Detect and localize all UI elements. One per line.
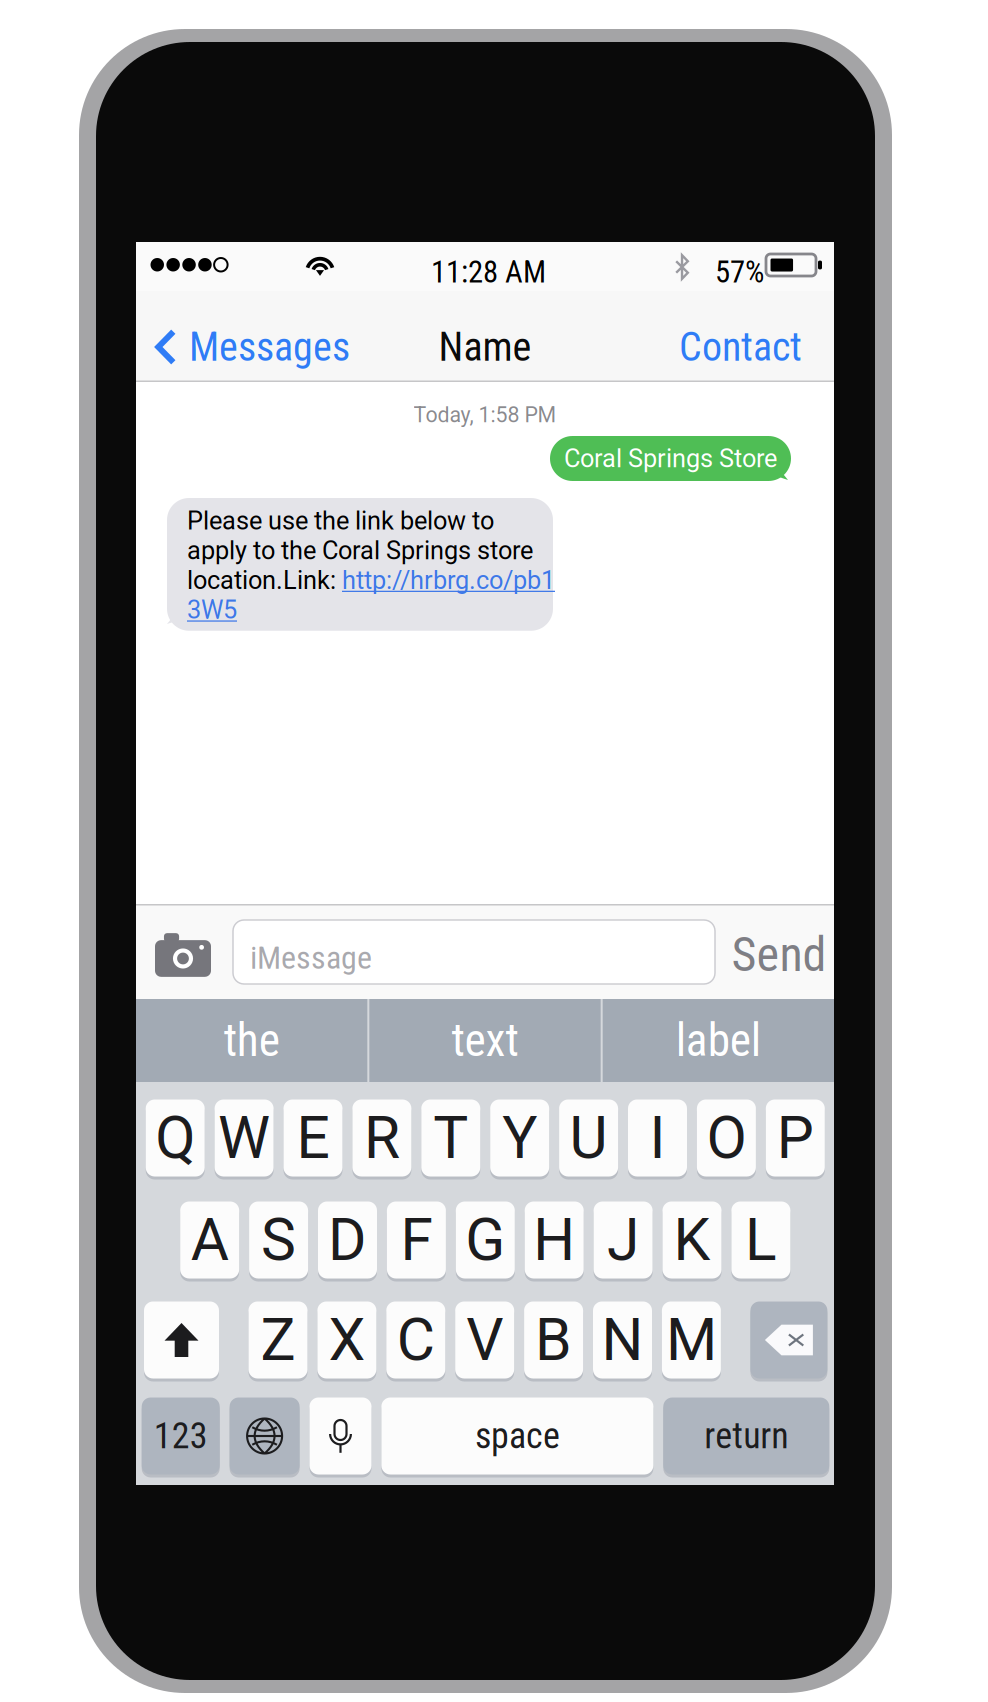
button[interactable]: Q — [146, 1098, 205, 1178]
staticText: B — [535, 1306, 572, 1374]
staticText: L — [745, 1206, 777, 1274]
button[interactable]: E — [283, 1098, 342, 1178]
staticText: A — [191, 1206, 229, 1274]
staticText: space — [475, 1415, 560, 1457]
staticText: U — [570, 1104, 608, 1172]
button[interactable]: Camera — [136, 904, 230, 999]
button[interactable]: I — [628, 1098, 687, 1178]
staticText: Send — [731, 926, 826, 983]
staticText: Coral Springs Store — [564, 444, 777, 473]
staticText: return — [704, 1415, 788, 1457]
staticText: N — [601, 1306, 643, 1374]
staticText: Messages — [189, 324, 350, 370]
staticText: 11:28 AM — [431, 254, 546, 290]
button[interactable]: return — [663, 1396, 829, 1476]
staticText: iMessage — [250, 939, 372, 976]
button[interactable]: R — [352, 1098, 411, 1178]
staticText: the — [224, 1014, 280, 1067]
staticText: O — [706, 1104, 746, 1172]
staticText: T — [433, 1104, 468, 1172]
staticText: text — [451, 1014, 518, 1067]
staticText: Today, 1:58 PM — [413, 402, 556, 427]
staticText: W — [218, 1104, 270, 1172]
staticText: S — [261, 1206, 296, 1274]
button[interactable]: H — [525, 1200, 584, 1280]
button[interactable]: S — [249, 1200, 308, 1280]
button[interactable]: label — [603, 999, 834, 1082]
staticText: C — [397, 1306, 435, 1374]
button[interactable]: V — [455, 1300, 514, 1380]
staticText: K — [673, 1206, 710, 1274]
button[interactable]: Dictation — [309, 1396, 371, 1476]
staticText: location.Link: — [187, 565, 342, 595]
staticText: apply to the Coral Springs store — [187, 536, 533, 565]
button[interactable]: Send — [724, 907, 834, 1002]
staticText: D — [328, 1206, 367, 1274]
staticText: Q — [155, 1104, 195, 1172]
staticText: H — [533, 1206, 575, 1274]
button[interactable]: Contact — [659, 310, 822, 384]
staticText: 123 — [154, 1415, 208, 1457]
button[interactable]: O — [697, 1098, 756, 1178]
button[interactable]: B — [524, 1300, 583, 1380]
staticText: J — [607, 1206, 639, 1274]
staticText: M — [666, 1306, 717, 1374]
staticText: label — [676, 1014, 761, 1067]
staticText: R — [364, 1104, 400, 1172]
button[interactable]: Shift — [144, 1300, 219, 1380]
button[interactable]: J — [594, 1200, 653, 1280]
button[interactable]: 123 — [142, 1396, 220, 1476]
button[interactable]: A — [180, 1200, 239, 1280]
button[interactable]: T — [421, 1098, 480, 1178]
button[interactable]: the — [136, 999, 367, 1082]
staticText: Please use the link below to — [187, 506, 494, 536]
button[interactable]: X — [317, 1300, 376, 1380]
button[interactable]: iMessage — [233, 920, 715, 984]
button[interactable]: space — [381, 1396, 653, 1476]
button[interactable]: text — [369, 999, 601, 1082]
staticText: 57% — [715, 254, 764, 290]
button[interactable]: Z — [248, 1300, 307, 1380]
staticText: E — [296, 1104, 329, 1172]
button[interactable]: Messages — [136, 310, 366, 384]
button[interactable]: Y — [490, 1098, 549, 1178]
staticText: Y — [502, 1104, 537, 1172]
button[interactable]: D — [318, 1200, 377, 1280]
staticText: G — [465, 1206, 505, 1274]
button[interactable]: Backspace — [750, 1300, 827, 1380]
button[interactable]: G — [456, 1200, 515, 1280]
staticText: I — [649, 1104, 665, 1172]
button[interactable]: Next keyboard — [230, 1396, 300, 1476]
button[interactable]: F — [387, 1200, 446, 1280]
staticText: Z — [260, 1306, 295, 1374]
staticText: P — [777, 1104, 814, 1172]
staticText: http://hrbrg.co/pb1 — [342, 565, 555, 595]
staticText: V — [466, 1306, 503, 1374]
button[interactable]: L — [731, 1200, 790, 1280]
staticText: F — [400, 1206, 432, 1274]
button[interactable]: K — [662, 1200, 721, 1280]
button[interactable]: N — [593, 1300, 652, 1380]
button[interactable]: W — [215, 1098, 274, 1178]
button[interactable]: U — [559, 1098, 618, 1178]
staticText: X — [328, 1306, 365, 1374]
staticText: 3W5 — [187, 595, 237, 625]
staticText: Contact — [679, 324, 802, 370]
button[interactable]: C — [386, 1300, 445, 1380]
button[interactable]: P — [766, 1098, 825, 1178]
button[interactable]: M — [662, 1300, 721, 1380]
staticText: Name — [438, 324, 531, 370]
